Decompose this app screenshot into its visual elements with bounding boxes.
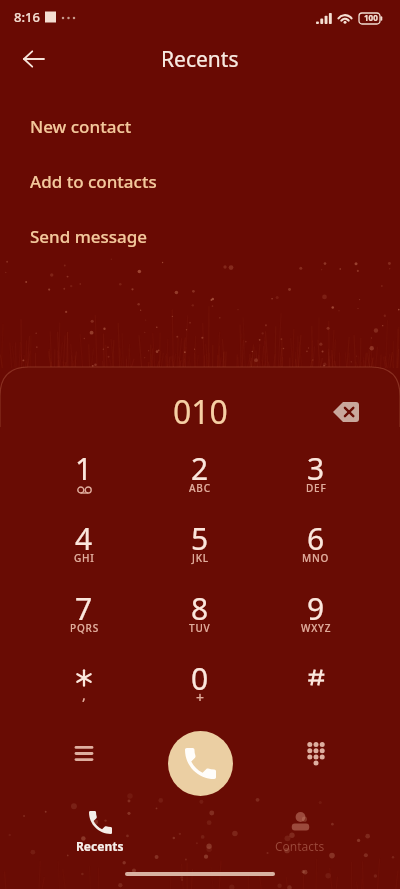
staticText: 7 bbox=[75, 588, 93, 629]
staticText: 6 bbox=[307, 518, 325, 559]
button[interactable]: 7 bbox=[26, 581, 142, 651]
staticText: 9 bbox=[307, 588, 325, 629]
staticText: Contacts bbox=[275, 838, 325, 854]
button[interactable]: 0 bbox=[142, 651, 258, 721]
button[interactable]: 9 bbox=[258, 581, 374, 651]
button[interactable]: New contact bbox=[0, 99, 400, 154]
staticText: 4 bbox=[75, 518, 93, 559]
staticText: 010 bbox=[173, 390, 228, 434]
staticText: JKL bbox=[192, 551, 209, 565]
staticText: Recents bbox=[76, 838, 124, 854]
button[interactable] bbox=[258, 651, 374, 721]
button[interactable]: 5 bbox=[142, 511, 258, 581]
staticText: GHI bbox=[74, 551, 95, 565]
staticText: DEF bbox=[306, 481, 327, 495]
staticText: MNO bbox=[302, 551, 330, 565]
staticText: , bbox=[82, 685, 87, 704]
button[interactable]: 4 bbox=[26, 511, 142, 581]
button[interactable]: Menu bbox=[26, 721, 142, 795]
button[interactable]: Back bbox=[13, 38, 55, 80]
staticText: Recents bbox=[161, 45, 239, 74]
button[interactable]: 6 bbox=[258, 511, 374, 581]
button[interactable]: , bbox=[26, 651, 142, 721]
button[interactable]: 1 bbox=[26, 441, 142, 511]
staticText: 8 bbox=[191, 588, 209, 629]
staticText: 8:16 bbox=[14, 8, 40, 26]
staticText: 1 bbox=[75, 448, 93, 489]
button[interactable]: Recents bbox=[0, 795, 200, 867]
button[interactable]: Send message bbox=[0, 209, 400, 264]
button[interactable]: 3 bbox=[258, 441, 374, 511]
staticText: 2 bbox=[191, 448, 209, 489]
staticText: + bbox=[196, 688, 205, 707]
staticText: Send message bbox=[30, 225, 148, 248]
button[interactable]: Contacts bbox=[200, 795, 400, 867]
staticText: WXYZ bbox=[301, 621, 332, 635]
staticText: 100 bbox=[364, 12, 378, 23]
staticText: 3 bbox=[307, 448, 325, 489]
button[interactable]: Backspace bbox=[325, 391, 367, 433]
staticText: 0 bbox=[191, 658, 209, 699]
button[interactable]: Call bbox=[168, 731, 233, 796]
staticText: PQRS bbox=[70, 621, 99, 635]
staticText: Add to contacts bbox=[30, 170, 157, 193]
staticText: TUV bbox=[189, 621, 211, 635]
button[interactable]: 8 bbox=[142, 581, 258, 651]
staticText: 5 bbox=[191, 518, 209, 559]
button[interactable]: Add to contacts bbox=[0, 154, 400, 209]
button[interactable]: 2 bbox=[142, 441, 258, 511]
staticText: ABC bbox=[189, 481, 211, 495]
button[interactable]: Dialpad bbox=[258, 721, 374, 795]
staticText: New contact bbox=[30, 115, 132, 138]
